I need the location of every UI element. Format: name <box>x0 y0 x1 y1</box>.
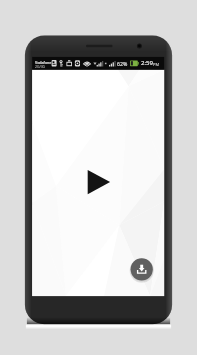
staticText: Vodafone <box>35 60 52 65</box>
button[interactable]: Download <box>130 258 155 283</box>
staticText: 2:59 <box>141 59 153 67</box>
staticText: 62% <box>117 60 128 67</box>
staticText: 2G/3G <box>35 64 46 69</box>
button[interactable]: Play <box>87 169 111 195</box>
staticText: PM <box>153 62 160 67</box>
